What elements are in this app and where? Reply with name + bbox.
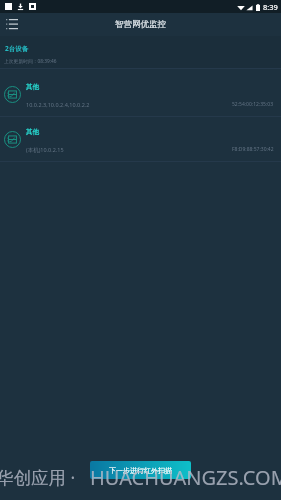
staticText: 其他 [26,128,39,136]
staticText: 华创应用 · [0,465,76,489]
staticText: 其他 [26,83,39,91]
staticText: 智营网优监控 [115,19,166,30]
staticText: (本机)10.0.2.15 [26,146,64,154]
staticText: 8:39 [263,2,278,12]
button[interactable]: Menu [0,13,23,36]
button[interactable]: 其他 [0,117,281,162]
button[interactable]: 下一步进行红外扫描 [90,461,191,479]
staticText: 52:54:00:12:35:03 [232,101,274,108]
staticText: 2台设备 [5,44,29,53]
staticText: F8:D9:88:57:30:42 [232,146,274,153]
staticText: 上次更新时间：08:39:46 [4,58,57,65]
staticText: 下一步进行红外扫描 [109,466,172,475]
staticText: 10.0.2.3,10.0.2.4,10.0.2.2 [26,101,90,108]
button[interactable]: 其他 [0,72,281,117]
staticText: HUACHUANGZS.COM [90,464,281,491]
